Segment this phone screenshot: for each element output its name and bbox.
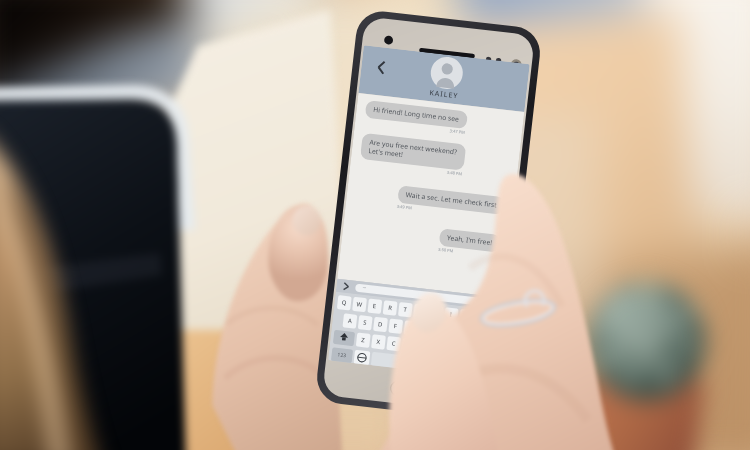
button[interactable] bbox=[0, 0, 750, 450]
